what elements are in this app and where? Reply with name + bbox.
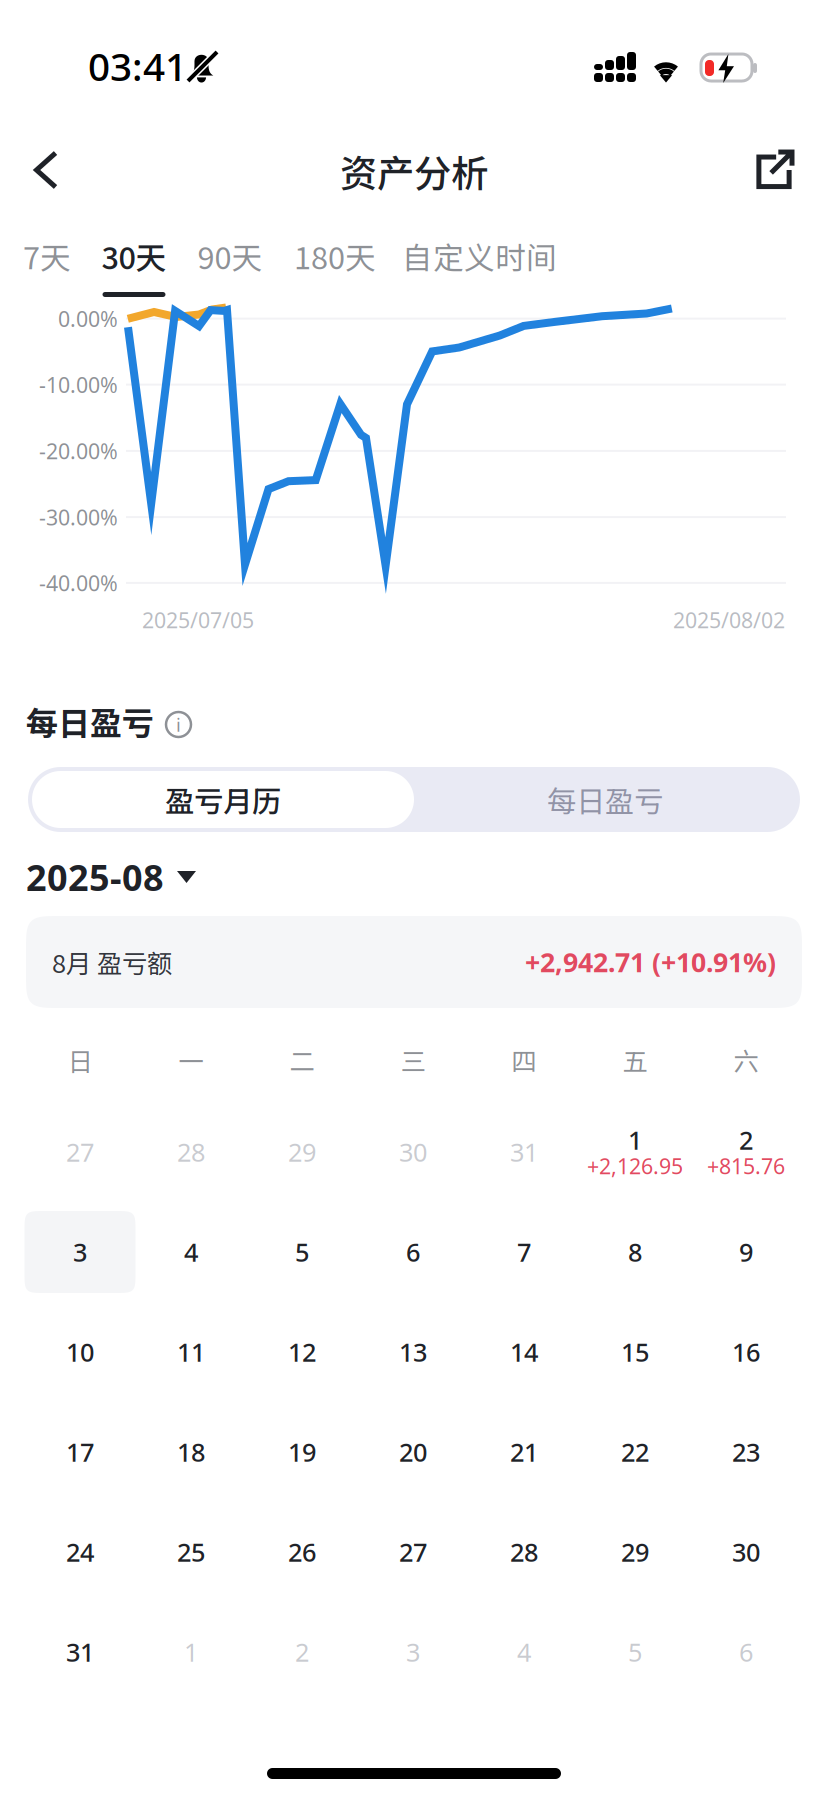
button[interactable]: 19 — [246, 1402, 357, 1502]
staticText: 30天 — [101, 234, 166, 278]
staticText: 8月 盈亏额 — [52, 944, 172, 980]
staticText: 5 — [295, 1235, 309, 1269]
button[interactable]: 20 — [357, 1402, 468, 1502]
staticText: 2025-08 — [26, 852, 164, 901]
staticText: 8 — [628, 1235, 642, 1269]
staticText: 3 — [406, 1635, 420, 1669]
button[interactable]: 30天 — [88, 220, 180, 308]
button[interactable]: 5 — [246, 1202, 357, 1302]
button[interactable]: 30 — [357, 1102, 468, 1202]
staticText: 21 — [510, 1435, 538, 1469]
staticText: 四 — [511, 1042, 536, 1078]
button[interactable]: 自定义时间 — [392, 220, 567, 308]
staticText: 28 — [177, 1135, 205, 1169]
button[interactable]: 6 — [690, 1602, 801, 1702]
button[interactable]: 30 — [690, 1502, 801, 1602]
staticText: 2025/07/05 — [142, 605, 254, 635]
staticText: 23 — [732, 1435, 760, 1469]
button[interactable]: 8 — [579, 1202, 690, 1302]
staticText: 2 — [739, 1123, 753, 1157]
button[interactable]: 27 — [357, 1502, 468, 1602]
button[interactable]: 2 — [246, 1602, 357, 1702]
staticText: 31 — [66, 1635, 94, 1669]
button[interactable]: 10 — [24, 1302, 135, 1402]
staticText: -40.00% — [39, 568, 118, 597]
button[interactable]: 返回 — [0, 124, 92, 216]
button[interactable]: 1 — [579, 1102, 690, 1202]
button[interactable]: 25 — [135, 1502, 246, 1602]
staticText: 29 — [288, 1135, 316, 1169]
staticText: 2 — [295, 1635, 309, 1669]
button[interactable]: 2 — [690, 1102, 801, 1202]
button[interactable]: 3 — [24, 1202, 135, 1302]
staticText: 3 — [73, 1235, 87, 1269]
button[interactable]: 17 — [24, 1402, 135, 1502]
staticText: i — [176, 712, 181, 737]
staticText: 27 — [66, 1135, 94, 1169]
button[interactable]: 31 — [24, 1602, 135, 1702]
button[interactable]: 1 — [135, 1602, 246, 1702]
staticText: 11 — [177, 1335, 205, 1369]
button[interactable]: 分享 — [728, 124, 820, 216]
button[interactable]: 90天 — [184, 220, 276, 308]
staticText: 7 — [517, 1235, 531, 1269]
button[interactable]: 22 — [579, 1402, 690, 1502]
staticText: 13 — [399, 1335, 427, 1369]
button[interactable]: 11 — [135, 1302, 246, 1402]
staticText: 22 — [621, 1435, 649, 1469]
staticText: 4 — [517, 1635, 531, 1669]
button[interactable]: 28 — [468, 1502, 579, 1602]
staticText: 180天 — [294, 234, 376, 278]
button[interactable]: 31 — [468, 1102, 579, 1202]
staticText: 12 — [288, 1335, 316, 1369]
button[interactable]: 3 — [357, 1602, 468, 1702]
button[interactable]: 7天 — [10, 220, 84, 308]
button[interactable]: 15 — [579, 1302, 690, 1402]
staticText: 6 — [406, 1235, 420, 1269]
staticText: 7天 — [23, 234, 71, 278]
staticText: 10 — [66, 1335, 94, 1369]
staticText: 二 — [289, 1042, 314, 1078]
staticText: 五 — [622, 1042, 647, 1078]
button[interactable]: 每日盈亏 — [414, 771, 796, 828]
button[interactable]: 28 — [135, 1102, 246, 1202]
staticText: 16 — [732, 1335, 760, 1369]
button[interactable]: 18 — [135, 1402, 246, 1502]
button[interactable]: 26 — [246, 1502, 357, 1602]
button[interactable]: 9 — [690, 1202, 801, 1302]
staticText: 17 — [66, 1435, 94, 1469]
button[interactable]: 23 — [690, 1402, 801, 1502]
staticText: 18 — [177, 1435, 205, 1469]
button[interactable]: 21 — [468, 1402, 579, 1502]
button[interactable]: 180天 — [280, 220, 390, 308]
staticText: +2,942.71 (+10.91%) — [525, 944, 776, 980]
staticText: 2025/08/02 — [673, 605, 785, 635]
button[interactable]: 7 — [468, 1202, 579, 1302]
staticText: 30 — [399, 1135, 427, 1169]
staticText: -30.00% — [39, 503, 118, 532]
button[interactable]: 16 — [690, 1302, 801, 1402]
button[interactable]: 12 — [246, 1302, 357, 1402]
staticText: 资产分析 — [340, 144, 488, 198]
button[interactable]: 2025-08 — [26, 852, 196, 902]
staticText: +815.76 — [707, 1151, 785, 1181]
button[interactable]: 4 — [468, 1602, 579, 1702]
button[interactable]: 29 — [579, 1502, 690, 1602]
staticText: 一 — [178, 1042, 203, 1078]
staticText: 三 — [400, 1042, 425, 1078]
staticText: 24 — [66, 1535, 94, 1569]
staticText: -10.00% — [39, 370, 118, 399]
staticText: 每日盈亏 — [547, 778, 663, 821]
button[interactable]: 29 — [246, 1102, 357, 1202]
staticText: 28 — [510, 1535, 538, 1569]
button[interactable]: 5 — [579, 1602, 690, 1702]
button[interactable]: 14 — [468, 1302, 579, 1402]
button[interactable]: 6 — [357, 1202, 468, 1302]
button[interactable]: 27 — [24, 1102, 135, 1202]
staticText: 30 — [732, 1535, 760, 1569]
button[interactable]: 4 — [135, 1202, 246, 1302]
button[interactable]: 13 — [357, 1302, 468, 1402]
button[interactable]: 24 — [24, 1502, 135, 1602]
staticText: 15 — [621, 1335, 649, 1369]
button[interactable]: 盈亏月历 — [32, 771, 414, 828]
